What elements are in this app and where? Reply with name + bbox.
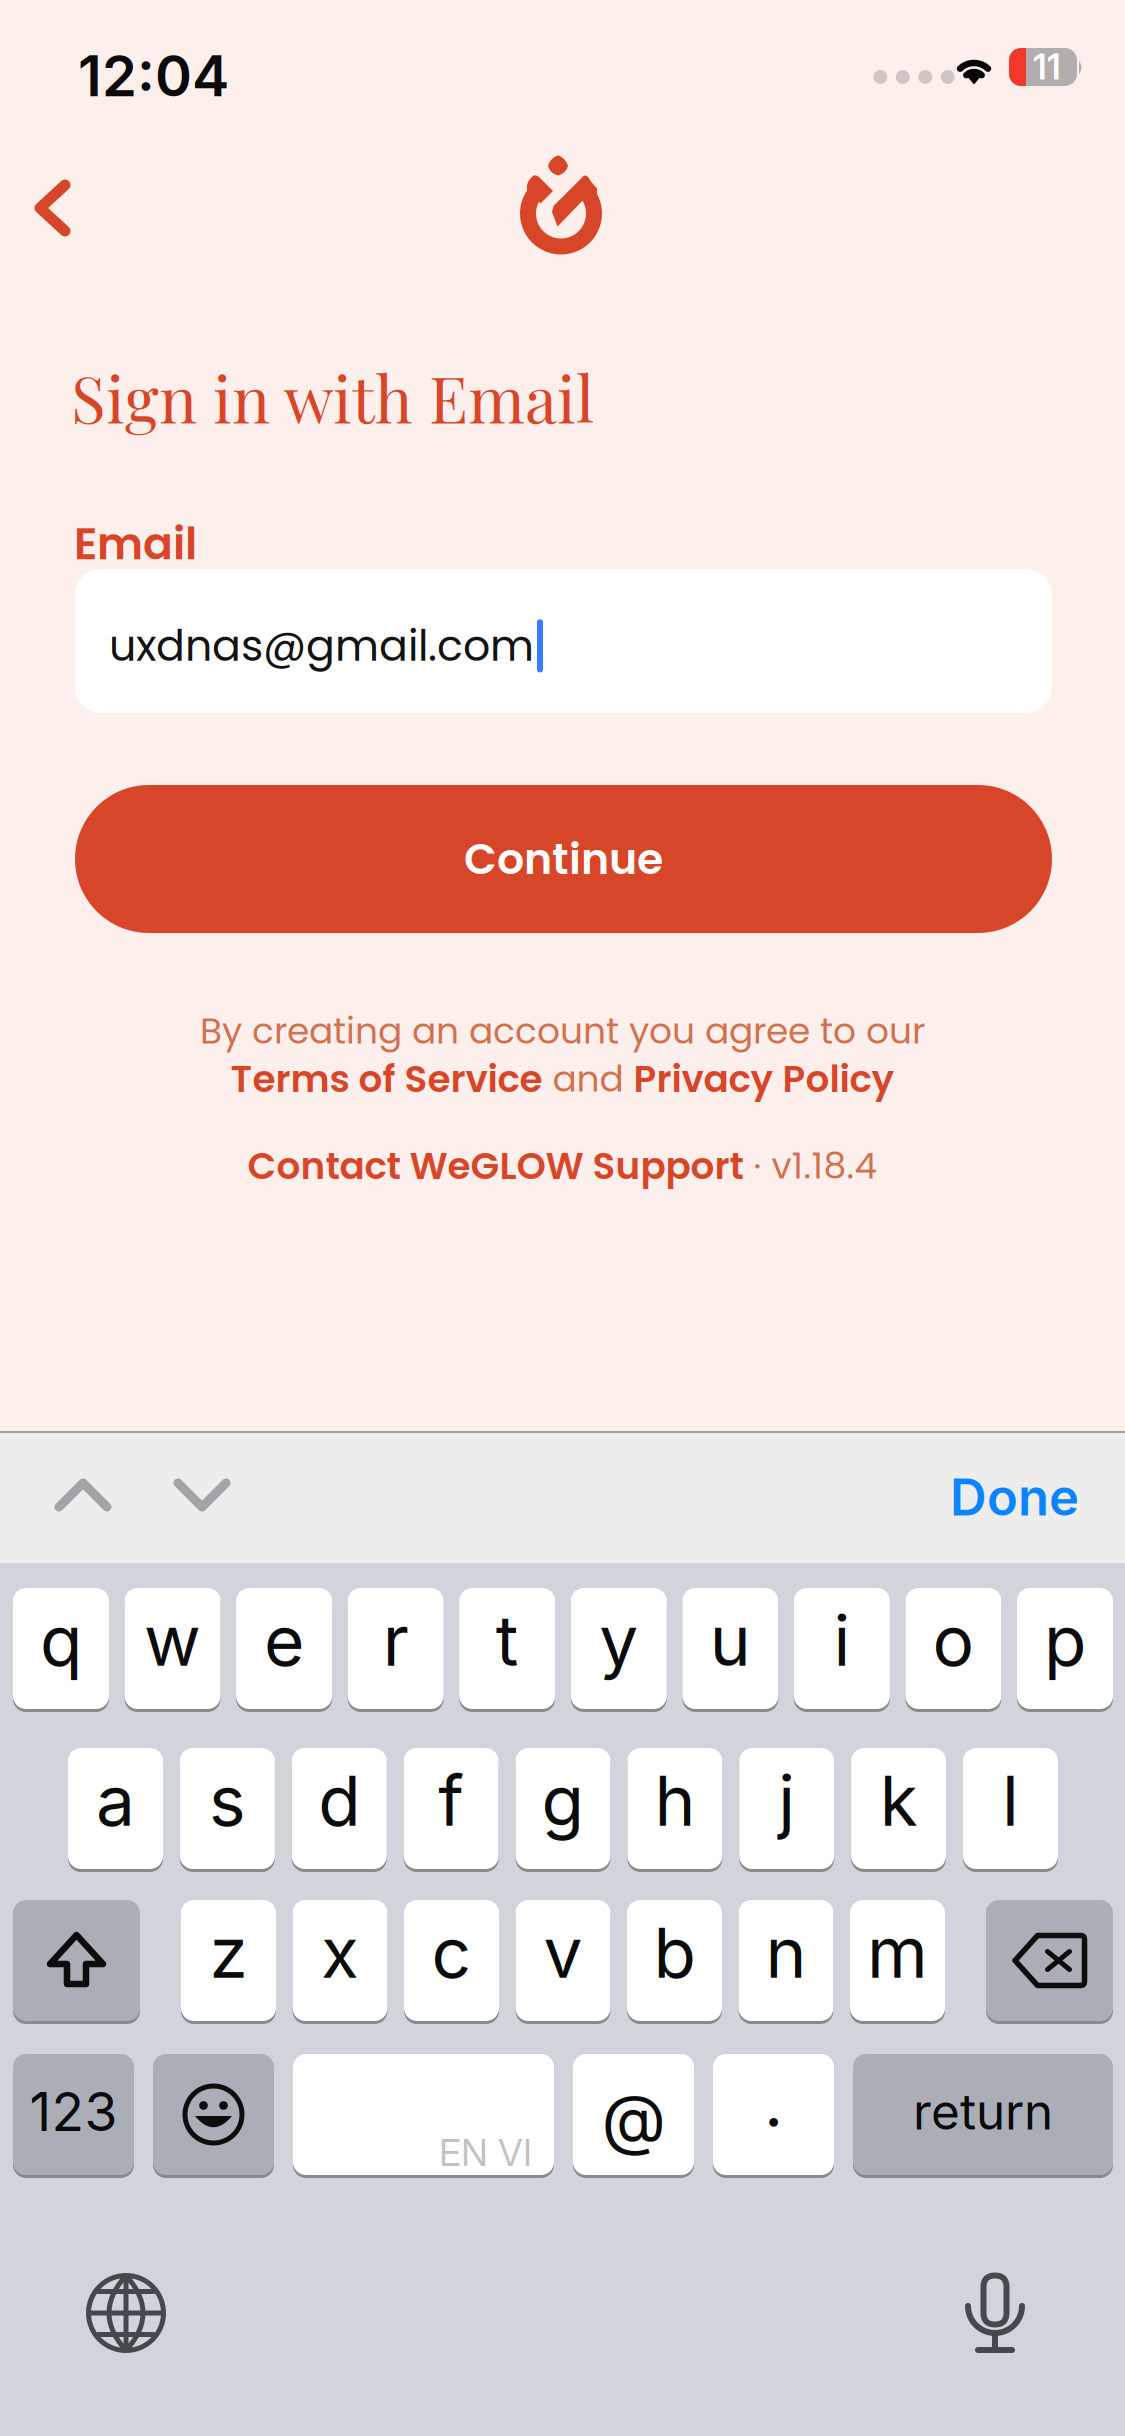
button[interactable]: d — [292, 1748, 387, 1872]
staticText: h — [654, 1759, 695, 1842]
button[interactable]: 123 — [13, 2054, 134, 2178]
button[interactable]: m — [850, 1900, 945, 2024]
staticText: 12:04 — [78, 42, 229, 110]
staticText: l — [1002, 1759, 1019, 1842]
button[interactable]: l — [963, 1748, 1058, 1872]
button[interactable]: x — [292, 1900, 387, 2024]
staticText: o — [932, 1599, 974, 1682]
staticText: Done — [950, 1466, 1079, 1528]
staticText: s — [209, 1759, 246, 1842]
button[interactable]: Dictate — [943, 2261, 1047, 2365]
staticText: Privacy Policy — [633, 1053, 894, 1105]
staticText: Continue — [464, 829, 663, 889]
staticText: q — [40, 1599, 82, 1682]
button[interactable]: k — [851, 1748, 946, 1872]
button[interactable]: v — [515, 1900, 610, 2024]
staticText: and — [542, 1054, 633, 1104]
button[interactable]: h — [627, 1748, 722, 1872]
staticText: f — [438, 1759, 464, 1842]
button[interactable]: j — [739, 1748, 834, 1872]
staticText: y — [599, 1599, 638, 1682]
button[interactable] — [153, 2054, 274, 2178]
button[interactable]: i — [794, 1588, 890, 1712]
button[interactable]: Continue — [75, 785, 1052, 933]
button[interactable]: @ — [573, 2054, 694, 2178]
button[interactable] — [13, 1900, 140, 2024]
staticText: r — [383, 1599, 409, 1682]
button[interactable]: r — [348, 1588, 444, 1712]
button[interactable]: u — [682, 1588, 778, 1712]
staticText: v — [543, 1911, 582, 1994]
button[interactable]: n — [738, 1900, 833, 2024]
button[interactable] — [986, 1900, 1113, 2024]
staticText: t — [496, 1599, 519, 1682]
button[interactable]: s — [180, 1748, 275, 1872]
staticText: w — [144, 1599, 201, 1682]
staticText: b — [653, 1911, 695, 1994]
button[interactable]: . — [713, 2054, 834, 2178]
staticText: c — [431, 1911, 471, 1994]
staticText: By creating an account you agree to our — [200, 1006, 925, 1056]
button[interactable]: w — [125, 1588, 221, 1712]
staticText: n — [765, 1911, 806, 1994]
staticText: Terms of Service — [230, 1053, 542, 1105]
button[interactable]: Contact WeGLOW Support — [247, 1140, 743, 1192]
staticText: m — [867, 1911, 928, 1994]
button[interactable]: Back — [2, 158, 102, 258]
staticText: v1.18.4 — [771, 1141, 877, 1191]
staticText: uxdnas@gmail.com — [109, 616, 534, 676]
button[interactable]: EN VI — [293, 2054, 554, 2178]
button[interactable]: a — [68, 1748, 163, 1872]
staticText: x — [321, 1911, 359, 1994]
staticText: k — [880, 1759, 918, 1842]
staticText: p — [1044, 1599, 1086, 1682]
button[interactable]: t — [459, 1588, 555, 1712]
staticText: 11 — [1033, 46, 1061, 88]
staticText: · — [743, 1141, 771, 1191]
staticText: u — [710, 1599, 751, 1682]
button[interactable]: Done — [950, 1466, 1079, 1528]
button[interactable]: y — [571, 1588, 667, 1712]
button[interactable]: Privacy Policy — [633, 1053, 894, 1105]
staticText: return — [913, 2082, 1053, 2141]
staticText: 123 — [29, 2079, 117, 2144]
button[interactable]: e — [236, 1588, 332, 1712]
button[interactable]: q — [13, 1588, 109, 1712]
button[interactable]: Change keyboard — [76, 2263, 176, 2363]
button[interactable]: f — [404, 1748, 499, 1872]
staticText: j — [778, 1759, 795, 1842]
staticText: EN VI — [439, 2130, 532, 2175]
staticText: Contact WeGLOW Support — [247, 1140, 743, 1192]
button[interactable]: p — [1017, 1588, 1113, 1712]
staticText: e — [264, 1599, 304, 1682]
button[interactable]: return — [853, 2054, 1113, 2178]
staticText: Sign in with Email — [71, 354, 594, 439]
staticText: i — [833, 1599, 850, 1682]
button[interactable]: o — [905, 1588, 1001, 1712]
staticText: a — [96, 1759, 135, 1842]
button[interactable]: Previous field — [35, 1447, 131, 1543]
button[interactable]: g — [515, 1748, 610, 1872]
button[interactable]: z — [181, 1900, 276, 2024]
staticText: . — [764, 2062, 783, 2143]
staticText: @ — [601, 2078, 665, 2159]
staticText: z — [209, 1911, 247, 1994]
staticText: g — [541, 1759, 584, 1842]
button[interactable]: Next field — [154, 1447, 250, 1543]
staticText: Email — [74, 513, 197, 575]
staticText: d — [318, 1759, 360, 1842]
button[interactable]: Terms of Service — [230, 1053, 542, 1105]
button[interactable]: c — [404, 1900, 499, 2024]
button[interactable]: b — [627, 1900, 722, 2024]
